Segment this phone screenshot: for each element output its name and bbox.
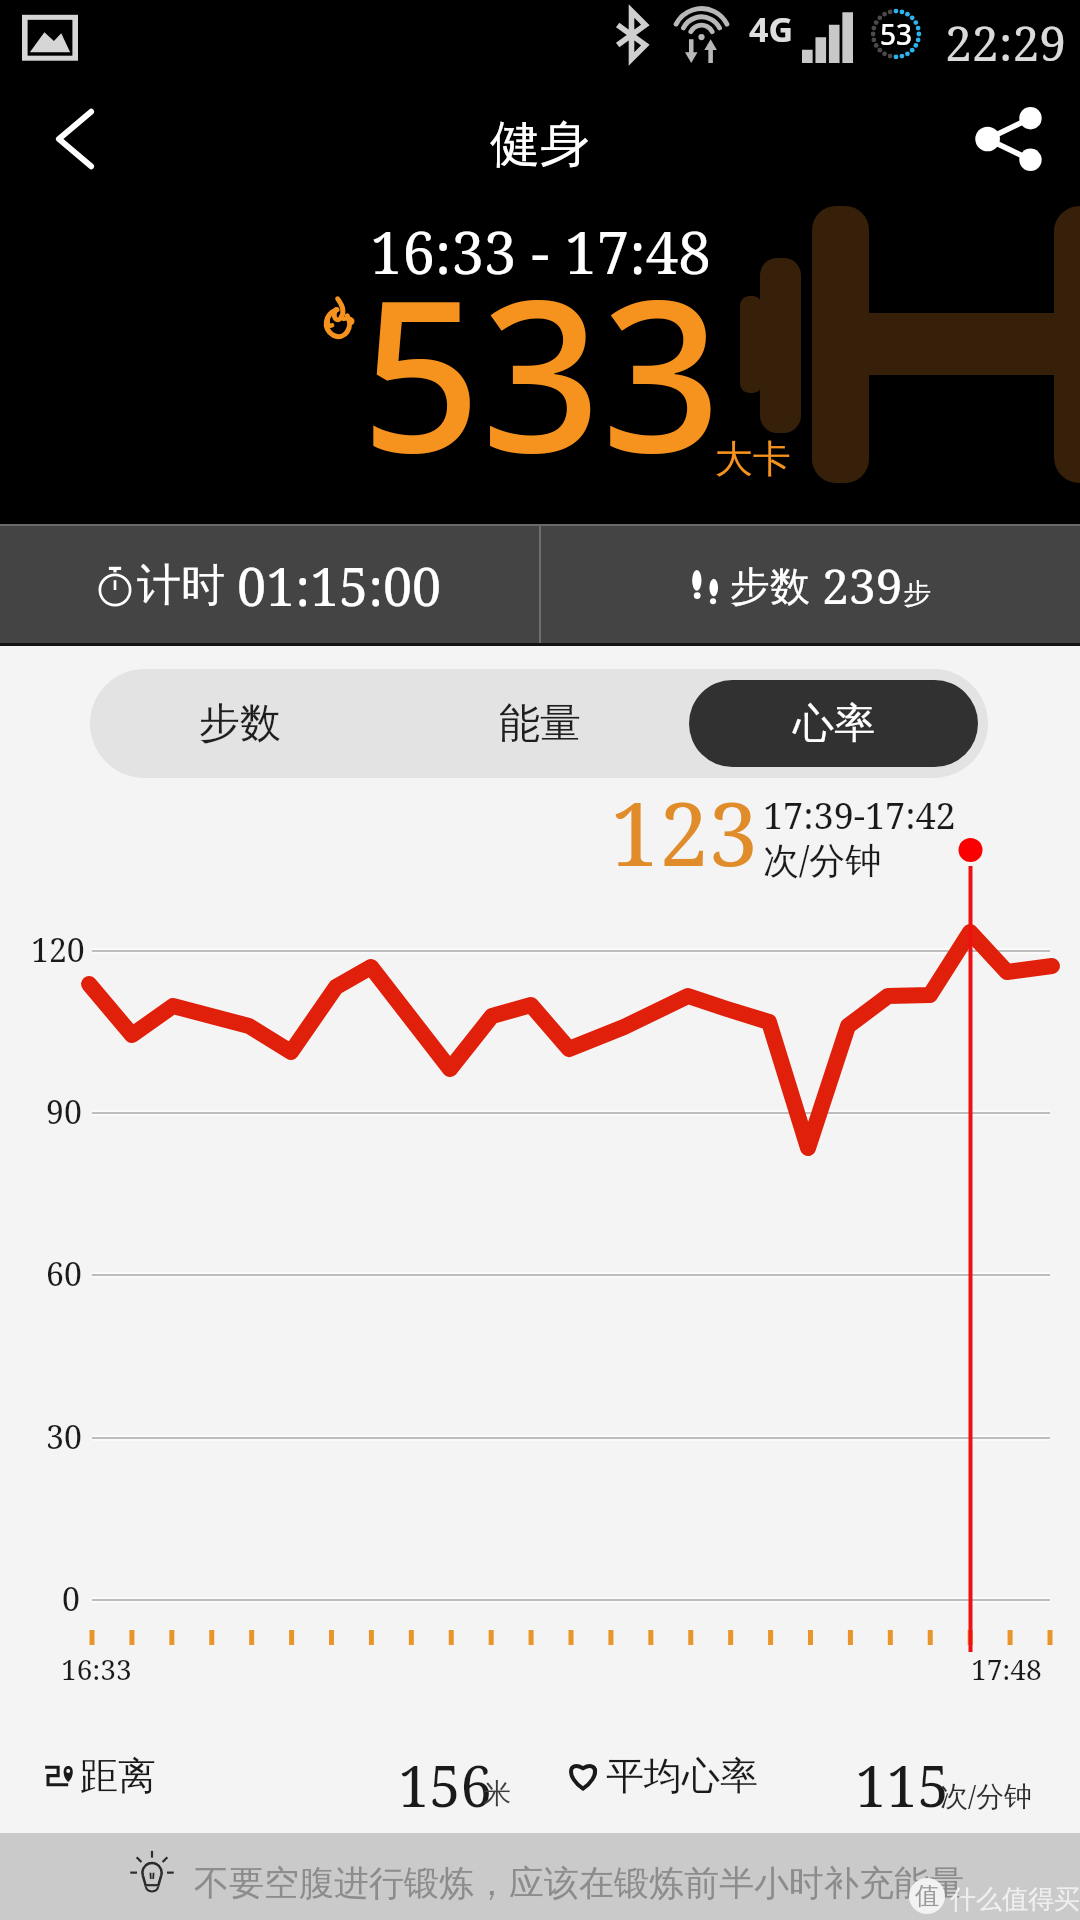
staticText: 22:29: [945, 10, 1067, 75]
staticText: 30: [46, 1415, 82, 1459]
staticText: 4G: [749, 6, 794, 52]
staticText: 步数: [199, 698, 281, 750]
button[interactable]: 步数: [541, 524, 1080, 646]
staticText: 心率: [793, 698, 875, 750]
staticText: 156: [398, 1747, 492, 1823]
button[interactable]: 计时: [0, 524, 539, 646]
staticText: 115: [855, 1747, 949, 1823]
staticText: 步数: [730, 561, 810, 611]
staticText: 16:33: [61, 1650, 132, 1688]
staticText: 120: [31, 928, 85, 972]
staticText: 次/分钟: [763, 835, 882, 884]
button[interactable]: Back: [25, 89, 125, 189]
staticText: 计时: [137, 558, 225, 613]
button[interactable]: 距离: [0, 1726, 1080, 1812]
staticText: 距离: [80, 1752, 156, 1800]
staticText: 17:48: [971, 1650, 1042, 1688]
staticText: 53: [880, 15, 913, 53]
staticText: 60: [46, 1252, 82, 1296]
button[interactable]: 心率: [689, 680, 978, 767]
staticText: 0: [62, 1577, 80, 1621]
staticText: 能量: [499, 698, 581, 750]
staticText: 大卡: [715, 435, 791, 483]
button[interactable]: 步数: [90, 680, 390, 767]
staticText: 16:33 - 17:48: [370, 212, 711, 291]
button[interactable]: Share: [960, 89, 1060, 189]
button[interactable]: 能量: [390, 680, 689, 767]
staticText: 不要空腹进行锻炼，应该在锻炼前半小时补充能量: [194, 1861, 964, 1905]
staticText: 01:15:00: [237, 550, 442, 621]
staticText: 239: [822, 553, 903, 618]
staticText: 17:39-17:42: [763, 791, 956, 840]
staticText: 90: [46, 1090, 82, 1134]
staticText: 步: [903, 576, 931, 611]
staticText: 什么值得买: [950, 1883, 1080, 1916]
staticText: 平均心率: [606, 1752, 758, 1800]
staticText: 健身: [490, 113, 590, 176]
staticText: 值: [915, 1881, 939, 1911]
staticText: 次/分钟: [940, 1776, 1033, 1814]
staticText: 米: [483, 1776, 511, 1811]
staticText: 123: [610, 772, 758, 892]
staticText: 533: [361, 228, 722, 514]
